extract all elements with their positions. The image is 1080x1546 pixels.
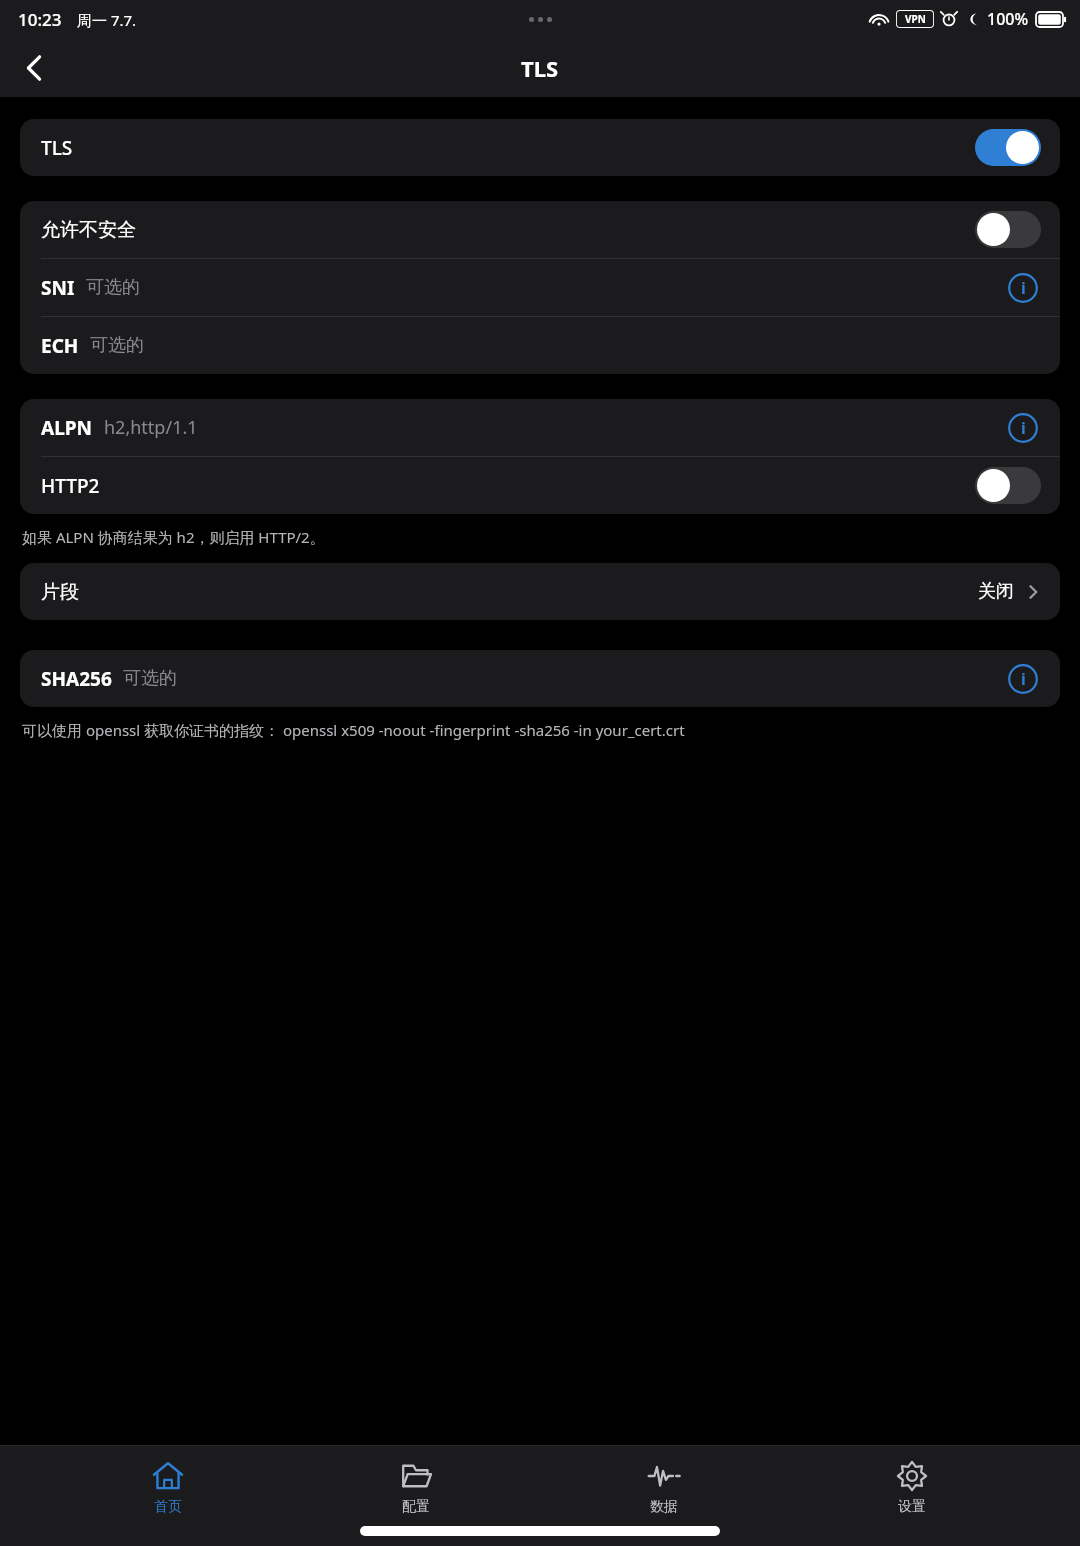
button[interactable]: Info [1005, 410, 1041, 446]
staticText: SHA256 [41, 666, 112, 692]
staticText: TLS [41, 135, 73, 161]
button[interactable]: Info [1005, 270, 1041, 306]
button[interactable]: TLS [20, 119, 1060, 176]
button[interactable]: ALPN [20, 399, 1060, 456]
staticText: 可以使用 openssl 获取你证书的指纹： openssl x509 -noo… [22, 720, 1058, 740]
staticText: i [1021, 668, 1026, 690]
staticText: 可选的 [86, 276, 140, 299]
button[interactable]: 设置 [832, 1456, 992, 1520]
button[interactable]: Back [6, 40, 62, 96]
staticText: HTTP2 [41, 473, 100, 499]
button[interactable]: 允许不安全 [20, 201, 1060, 258]
button[interactable]: Enabled [975, 129, 1041, 166]
button[interactable]: Info [1005, 661, 1041, 697]
button[interactable]: Disabled [975, 467, 1041, 504]
button[interactable]: HTTP2 [20, 457, 1060, 514]
staticText: VPN [905, 12, 926, 26]
staticText: TLS [521, 53, 559, 83]
staticText: 允许不安全 [41, 218, 136, 242]
button[interactable]: ECH [20, 317, 1060, 374]
button[interactable]: Disabled [975, 211, 1041, 248]
staticText: 如果 ALPN 协商结果为 h2，则启用 HTTP/2。 [22, 527, 1058, 547]
staticText: SNI [41, 275, 75, 301]
staticText: 设置 [898, 1498, 926, 1516]
staticText: i [1021, 277, 1026, 299]
staticText: 首页 [154, 1498, 182, 1516]
staticText: 可选的 [90, 334, 144, 357]
button[interactable]: 首页 [88, 1456, 248, 1520]
staticText: 片段 [41, 580, 79, 604]
button[interactable]: 数据 [584, 1456, 744, 1520]
button[interactable]: SHA256 [20, 650, 1060, 707]
staticText: 周一 7.7. [77, 10, 137, 30]
staticText: ECH [41, 333, 79, 359]
staticText: 100% [987, 8, 1029, 30]
staticText: 数据 [650, 1498, 678, 1516]
staticText: h2,http/1.1 [104, 415, 198, 440]
staticText: 可选的 [123, 667, 177, 690]
staticText: 关闭 [978, 580, 1014, 603]
staticText: 10:23 [18, 8, 62, 31]
staticText: i [1021, 417, 1026, 439]
button[interactable]: SNI [20, 259, 1060, 316]
staticText: ALPN [41, 415, 93, 441]
staticText: 配置 [402, 1498, 430, 1516]
button[interactable]: 配置 [336, 1456, 496, 1520]
button[interactable]: 片段 [20, 563, 1060, 620]
